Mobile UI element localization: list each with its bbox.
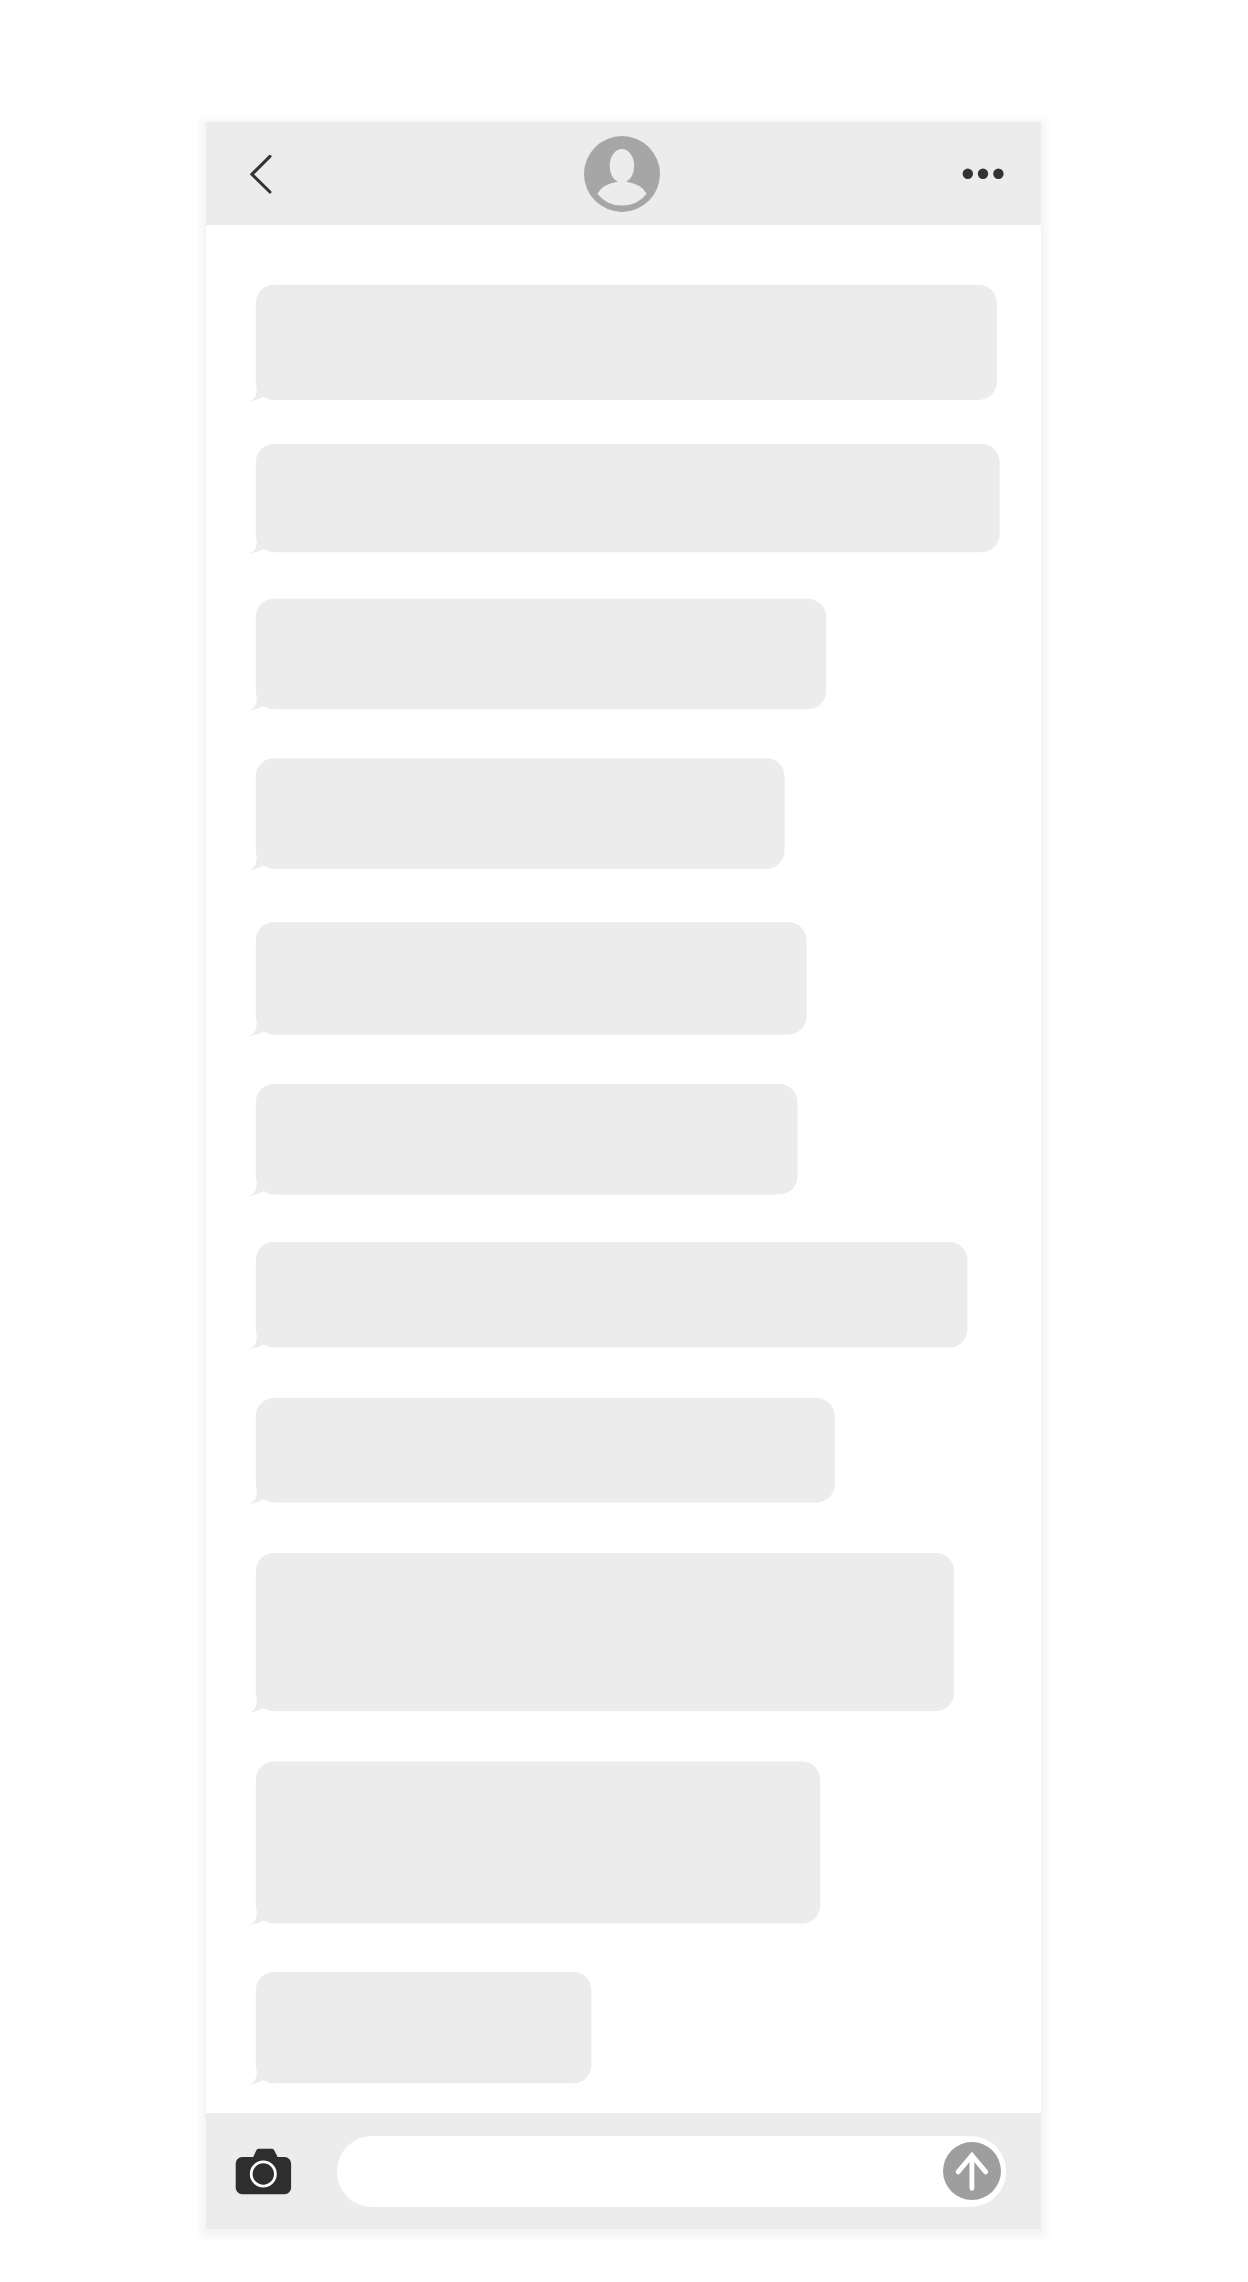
button[interactable]: Camera	[231, 2143, 296, 2201]
button[interactable]: Contact profile	[584, 136, 660, 212]
button[interactable]: More options	[946, 140, 1014, 208]
button[interactable]: Send	[943, 2142, 1001, 2200]
button[interactable]: Back	[224, 139, 294, 209]
button[interactable]: Message input	[337, 2136, 1006, 2207]
